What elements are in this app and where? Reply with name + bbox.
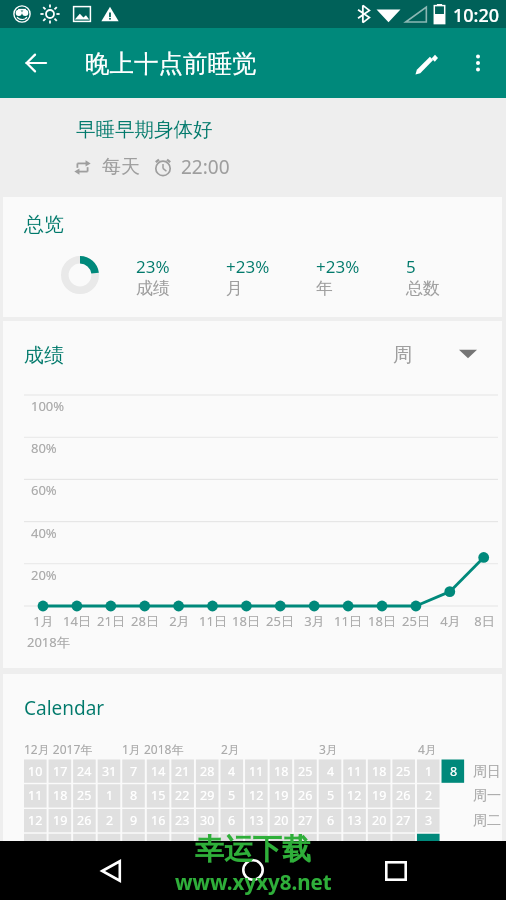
staticText: 28日	[131, 612, 159, 630]
staticText: 27	[298, 812, 313, 829]
staticText: 18	[53, 787, 68, 804]
staticText: 5	[406, 255, 416, 278]
staticText: 26	[77, 812, 92, 829]
staticText: 30	[200, 812, 215, 829]
staticText: 早睡早期身体好	[76, 117, 213, 142]
button[interactable]: Edit	[398, 28, 454, 98]
staticText: 12	[28, 812, 43, 829]
staticText: 周一	[473, 787, 501, 805]
staticText: 8	[130, 787, 138, 804]
staticText: 13	[347, 812, 362, 829]
button[interactable]: Recents	[372, 853, 420, 889]
staticText: 2	[425, 787, 433, 804]
staticText: 19	[274, 787, 289, 804]
staticText: 11	[28, 787, 43, 804]
staticText: 12	[249, 787, 264, 804]
staticText: 26	[298, 787, 313, 804]
staticText: 6	[327, 812, 335, 829]
staticText: 18	[274, 763, 289, 780]
staticText: 80%	[31, 439, 57, 457]
staticText: +23%	[316, 255, 360, 278]
staticText: 28	[200, 763, 215, 780]
staticText: 成绩	[24, 343, 64, 368]
staticText: 每天	[102, 155, 140, 179]
staticText: 13	[249, 812, 264, 829]
staticText: 12	[347, 787, 362, 804]
staticText: 2018年	[27, 633, 70, 651]
staticText: 17	[53, 763, 68, 780]
staticText: 14	[151, 763, 166, 780]
staticText: 4	[228, 763, 236, 780]
staticText: 18	[372, 763, 387, 780]
staticText: 9	[130, 812, 138, 829]
staticText: 31	[102, 763, 117, 780]
staticText: 11	[249, 763, 264, 780]
staticText: 26	[396, 787, 411, 804]
staticText: 2	[106, 812, 114, 829]
staticText: 月	[226, 278, 243, 299]
staticText: 成绩	[136, 278, 170, 299]
staticText: 40%	[31, 524, 57, 542]
staticText: 5	[327, 787, 335, 804]
staticText: 24	[77, 763, 92, 780]
staticText: 3月	[304, 612, 325, 630]
staticText: 8	[450, 763, 458, 780]
staticText: 23%	[136, 255, 170, 278]
staticText: 29	[200, 787, 215, 804]
staticText: 周日	[473, 763, 501, 781]
staticText: +23%	[226, 255, 270, 278]
staticText: Calendar	[24, 695, 105, 721]
staticText: 2月	[169, 612, 190, 630]
staticText: 4月	[440, 612, 461, 630]
staticText: 16	[151, 812, 166, 829]
staticText: 周二	[473, 812, 501, 830]
staticText: 27	[396, 812, 411, 829]
staticText: 6	[228, 812, 236, 829]
staticText: 10	[28, 763, 43, 780]
staticText: 20%	[31, 566, 57, 584]
staticText: 8日	[474, 612, 495, 630]
staticText: www.xyxy8.net	[175, 868, 332, 896]
staticText: 1月 2018年	[122, 741, 184, 757]
staticText: 18日	[368, 612, 396, 630]
staticText: 21	[175, 763, 190, 780]
staticText: 19	[372, 787, 387, 804]
staticText: 1	[106, 787, 114, 804]
staticText: 12月 2017年	[24, 741, 93, 757]
staticText: 23	[175, 812, 190, 829]
staticText: 10:20	[453, 3, 500, 28]
staticText: 20	[274, 812, 289, 829]
staticText: 4月	[418, 741, 437, 757]
staticText: 11	[347, 763, 362, 780]
staticText: 3月	[319, 741, 338, 757]
button[interactable]: Back	[87, 853, 135, 889]
staticText: 25	[77, 787, 92, 804]
staticText: 1	[425, 763, 433, 780]
staticText: 2月	[221, 741, 240, 757]
staticText: 21日	[97, 612, 125, 630]
staticText: 14日	[63, 612, 91, 630]
staticText: 周	[393, 342, 413, 367]
staticText: 25日	[402, 612, 430, 630]
staticText: 总览	[24, 212, 64, 237]
staticText: 18日	[232, 612, 260, 630]
staticText: 19	[53, 812, 68, 829]
staticText: 11日	[199, 612, 227, 630]
staticText: 20	[372, 812, 387, 829]
staticText: 3	[425, 812, 433, 829]
staticText: 100%	[31, 397, 65, 415]
button[interactable]: 周	[389, 334, 481, 374]
button[interactable]: Back	[8, 28, 64, 98]
staticText: 1月	[33, 612, 54, 630]
staticText: 22	[175, 787, 190, 804]
staticText: 25日	[266, 612, 294, 630]
staticText: 60%	[31, 481, 57, 499]
staticText: 5	[228, 787, 236, 804]
button[interactable]: Home	[229, 852, 277, 888]
staticText: 幸运下载	[195, 831, 311, 868]
staticText: 11日	[334, 612, 362, 630]
staticText: 年	[316, 278, 333, 299]
staticText: 22:00	[181, 154, 230, 180]
button[interactable]: More options	[454, 28, 502, 98]
staticText: 25	[396, 763, 411, 780]
